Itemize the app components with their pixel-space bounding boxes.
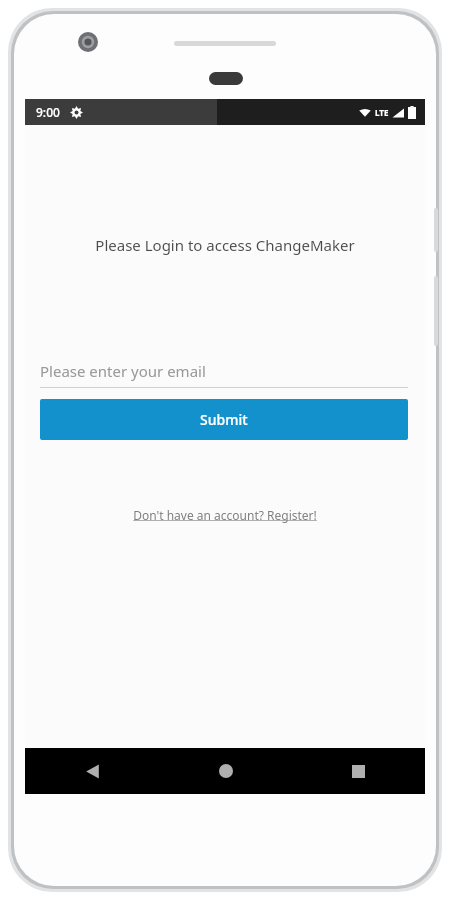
staticText: LTE (375, 107, 389, 118)
staticText: Submit (200, 410, 248, 429)
staticText: Please Login to access ChangeMaker (41, 235, 409, 255)
button[interactable]: Submit (40, 399, 408, 440)
button[interactable]: Recent apps (292, 748, 425, 794)
button[interactable]: Back (25, 748, 159, 794)
button[interactable]: Home (159, 748, 292, 794)
button[interactable]: Don't have an account? Register! (127, 504, 323, 526)
staticText: Don't have an account? Register! (133, 507, 317, 523)
staticText: 9:00 (36, 104, 60, 120)
button[interactable]: Please enter your email (40, 361, 408, 388)
staticText: Please enter your email (40, 361, 206, 381)
